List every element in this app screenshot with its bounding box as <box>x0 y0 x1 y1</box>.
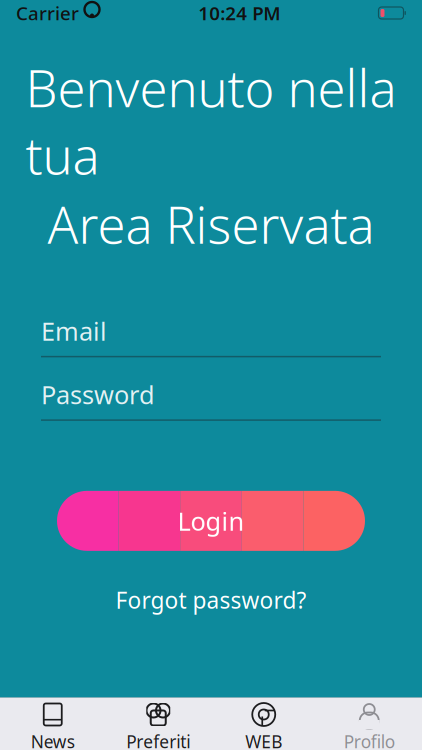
staticText: Benvenuto nella tua <box>25 54 396 189</box>
staticText: Preferiti <box>126 730 190 750</box>
staticText: Profilo <box>344 730 395 750</box>
staticText: WEB <box>245 730 282 750</box>
staticText: Area Riservata <box>47 191 374 258</box>
staticText: 10:24 PM <box>198 1 280 25</box>
button[interactable]: News <box>0 704 105 750</box>
button[interactable]: Profilo <box>316 704 422 750</box>
button[interactable]: Login <box>57 491 365 551</box>
button[interactable]: Forgot password? <box>103 579 318 621</box>
button[interactable]: Preferiti <box>105 704 211 750</box>
staticText: Email <box>41 314 107 348</box>
button[interactable]: WEB <box>211 704 316 750</box>
staticText: Carrier <box>16 1 79 25</box>
staticText: Forgot password? <box>115 585 306 615</box>
staticText: Password <box>41 377 155 411</box>
staticText: Login <box>177 504 244 538</box>
staticText: News <box>31 730 75 750</box>
